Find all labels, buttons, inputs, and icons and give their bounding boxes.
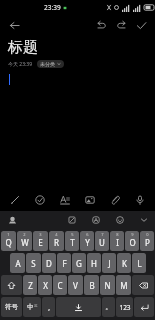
staticText: E bbox=[38, 237, 43, 248]
button[interactable]: 4 bbox=[49, 231, 64, 251]
button[interactable]: 123 bbox=[116, 297, 133, 317]
staticText: C bbox=[57, 280, 63, 291]
button[interactable]: 7 bbox=[95, 231, 109, 251]
staticText: 6 bbox=[86, 232, 89, 237]
staticText: 7 bbox=[101, 232, 104, 237]
staticText: I bbox=[116, 237, 119, 248]
staticText: 23:39 bbox=[44, 3, 61, 12]
button[interactable]: N bbox=[100, 275, 115, 295]
button[interactable]: Enter bbox=[134, 297, 154, 317]
staticText: 今天 23:39 bbox=[8, 61, 33, 68]
button[interactable]: Done bbox=[131, 15, 151, 35]
staticText: Y bbox=[85, 237, 90, 248]
staticText: 0 bbox=[146, 232, 149, 237]
button[interactable]: Shift bbox=[1, 275, 22, 295]
staticText: M bbox=[120, 280, 128, 291]
button[interactable]: S bbox=[26, 253, 41, 273]
button[interactable]: Delete bbox=[132, 275, 154, 295]
button[interactable]: 3 bbox=[33, 231, 48, 251]
staticText: N bbox=[104, 280, 111, 291]
button[interactable]: Text style bbox=[55, 190, 75, 210]
button[interactable]: H bbox=[87, 253, 101, 273]
button[interactable]: Back bbox=[4, 15, 24, 35]
button[interactable]: 符号 bbox=[1, 297, 22, 317]
staticText: X bbox=[43, 280, 48, 291]
button[interactable]: Clipboard bbox=[65, 213, 79, 227]
button[interactable]: B bbox=[84, 275, 99, 295]
staticText: S bbox=[31, 258, 36, 269]
staticText: 符号 bbox=[5, 303, 18, 311]
button[interactable]: K bbox=[117, 253, 131, 273]
staticText: P bbox=[145, 237, 150, 248]
staticText: A bbox=[15, 258, 21, 269]
staticText: 123 bbox=[119, 303, 131, 312]
button[interactable]: 6 bbox=[80, 231, 94, 251]
staticText: 3 bbox=[39, 232, 42, 237]
button[interactable]: 2 bbox=[17, 231, 32, 251]
staticText: G bbox=[76, 258, 82, 269]
staticText: J bbox=[108, 258, 111, 269]
button[interactable]: Undo bbox=[91, 15, 111, 35]
button[interactable]: 9 bbox=[125, 231, 139, 251]
staticText: Q bbox=[5, 237, 12, 248]
button[interactable]: J bbox=[102, 253, 116, 273]
button[interactable]: G bbox=[72, 253, 86, 273]
button[interactable]: 0 bbox=[140, 231, 154, 251]
staticText: V bbox=[73, 280, 78, 291]
staticText: T bbox=[70, 237, 75, 248]
staticText: 5 bbox=[71, 232, 74, 237]
button[interactable]: V bbox=[68, 275, 83, 295]
button[interactable]: Z bbox=[23, 275, 37, 295]
button[interactable]: Insert image bbox=[80, 190, 100, 210]
button[interactable]: A bbox=[10, 253, 25, 273]
staticText: 9 bbox=[131, 232, 134, 237]
staticText: 1 bbox=[7, 232, 10, 237]
staticText: R bbox=[54, 237, 59, 248]
staticText: Z bbox=[28, 280, 33, 291]
staticText: H bbox=[91, 258, 97, 269]
button[interactable]: 8 bbox=[110, 231, 124, 251]
staticText: 。 bbox=[105, 303, 112, 311]
staticText: 8 bbox=[116, 232, 119, 237]
staticText: , bbox=[48, 303, 50, 312]
staticText: 2 bbox=[23, 232, 26, 237]
staticText: 中 bbox=[27, 303, 34, 311]
staticText: 4 bbox=[55, 232, 58, 237]
button[interactable]: F bbox=[57, 253, 71, 273]
button[interactable]: Keyboard settings bbox=[4, 212, 20, 228]
button[interactable]: L bbox=[132, 253, 146, 273]
staticText: O bbox=[129, 237, 136, 248]
button[interactable]: Voice input bbox=[130, 190, 150, 210]
button[interactable]: Translate bbox=[89, 213, 103, 227]
button[interactable]: Redo bbox=[111, 15, 131, 35]
button[interactable]: X bbox=[38, 275, 52, 295]
button[interactable]: , bbox=[42, 297, 55, 317]
button[interactable]: Attach file bbox=[105, 190, 125, 210]
button[interactable]: C bbox=[53, 275, 67, 295]
staticText: F bbox=[62, 258, 67, 269]
staticText: B bbox=[89, 280, 95, 291]
staticText: D bbox=[46, 258, 52, 269]
button[interactable]: D bbox=[42, 253, 56, 273]
staticText: 标题 bbox=[8, 38, 38, 57]
button[interactable]: 1 bbox=[1, 231, 16, 251]
button[interactable]: Space bbox=[56, 297, 101, 317]
button[interactable]: 。 bbox=[102, 297, 115, 317]
staticText: 英 bbox=[34, 304, 38, 308]
staticText: K bbox=[122, 258, 127, 269]
button[interactable]: 未分类 bbox=[37, 60, 64, 68]
staticText: L bbox=[137, 258, 142, 269]
button[interactable]: Checklist bbox=[30, 190, 50, 210]
button[interactable]: 5 bbox=[65, 231, 79, 251]
button[interactable]: Draw bbox=[5, 190, 25, 210]
staticText: U bbox=[99, 237, 105, 248]
button[interactable]: M bbox=[116, 275, 131, 295]
staticText: 未分类 bbox=[40, 61, 55, 67]
staticText: W bbox=[21, 237, 29, 248]
button[interactable]: Hide keyboard bbox=[137, 213, 151, 227]
button[interactable]: 中 bbox=[23, 297, 41, 317]
button[interactable]: Emoji bbox=[113, 213, 127, 227]
